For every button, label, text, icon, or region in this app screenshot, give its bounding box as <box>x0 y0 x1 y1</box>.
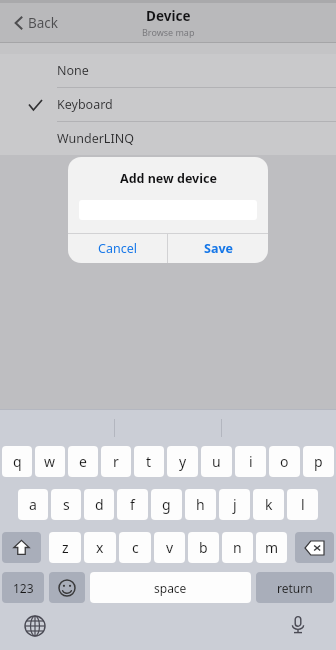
button[interactable]: return <box>256 572 334 603</box>
staticText: w <box>44 452 56 471</box>
button[interactable]: i <box>235 446 266 477</box>
staticText: a <box>29 495 37 514</box>
staticText: f <box>130 495 135 514</box>
staticText: l <box>301 495 305 514</box>
staticText: d <box>95 495 104 514</box>
button[interactable]: p <box>303 446 334 477</box>
staticText: h <box>196 495 205 514</box>
button[interactable]: m <box>256 532 287 563</box>
button[interactable]: v <box>154 532 185 563</box>
staticText: n <box>233 538 242 557</box>
button[interactable]: Keyboard <box>0 88 336 121</box>
button[interactable]: t <box>134 446 164 477</box>
button[interactable]: Next keyboard <box>24 615 48 639</box>
staticText: Cancel <box>98 240 137 257</box>
button[interactable]: None <box>0 54 336 87</box>
button[interactable]: Save <box>168 234 268 263</box>
staticText: m <box>265 538 279 557</box>
button[interactable]: g <box>151 489 182 520</box>
staticText: Back <box>28 14 59 32</box>
staticText: c <box>132 538 139 557</box>
button[interactable]: Dictation <box>288 615 312 639</box>
staticText: j <box>233 495 237 514</box>
button[interactable]: a <box>18 489 48 520</box>
staticText: g <box>162 495 171 514</box>
staticText: z <box>62 538 69 557</box>
staticText: None <box>57 62 89 79</box>
button[interactable]: space <box>90 572 251 603</box>
button[interactable]: b <box>188 532 219 563</box>
staticText: e <box>79 452 87 471</box>
button[interactable]: e <box>68 446 98 477</box>
staticText: y <box>179 452 187 471</box>
staticText: b <box>199 538 208 557</box>
button[interactable]: Back <box>10 8 64 38</box>
button[interactable]: Cancel <box>68 234 167 263</box>
button[interactable]: n <box>222 532 253 563</box>
button[interactable]: k <box>253 489 284 520</box>
button[interactable]: f <box>117 489 148 520</box>
staticText: return <box>277 580 313 596</box>
staticText: space <box>154 580 187 596</box>
button[interactable]: 123 <box>2 572 44 603</box>
button[interactable]: l <box>287 489 318 520</box>
staticText: t <box>146 452 152 471</box>
button[interactable]: Emoji <box>49 572 85 603</box>
button[interactable]: o <box>269 446 300 477</box>
button[interactable]: Shift <box>2 532 41 563</box>
button[interactable]: d <box>84 489 114 520</box>
button[interactable]: WunderLINQ <box>0 122 336 155</box>
staticText: Save <box>204 240 233 257</box>
staticText: o <box>280 452 289 471</box>
button[interactable]: y <box>167 446 198 477</box>
button[interactable]: h <box>185 489 216 520</box>
button[interactable]: c <box>119 532 151 563</box>
staticText: Browse map <box>142 26 195 38</box>
staticText: p <box>314 452 323 471</box>
staticText: u <box>212 452 221 471</box>
staticText: x <box>96 538 104 557</box>
staticText: k <box>265 495 273 514</box>
staticText: WunderLINQ <box>57 130 134 147</box>
staticText: v <box>166 538 174 557</box>
staticText: q <box>13 452 22 471</box>
button[interactable]: j <box>219 489 250 520</box>
button[interactable]: u <box>201 446 232 477</box>
staticText: i <box>249 452 253 471</box>
staticText: Device <box>146 7 191 25</box>
button[interactable]: q <box>2 446 32 477</box>
button[interactable]: r <box>101 446 131 477</box>
button[interactable]: Delete <box>295 532 334 563</box>
staticText: s <box>63 495 70 514</box>
button[interactable]: s <box>51 489 81 520</box>
staticText: Keyboard <box>57 96 113 113</box>
button[interactable]: z <box>49 532 81 563</box>
staticText: r <box>113 452 119 471</box>
button[interactable]: w <box>35 446 65 477</box>
button[interactable]: x <box>84 532 116 563</box>
staticText: Add new device <box>120 170 217 187</box>
staticText: 123 <box>13 580 34 596</box>
